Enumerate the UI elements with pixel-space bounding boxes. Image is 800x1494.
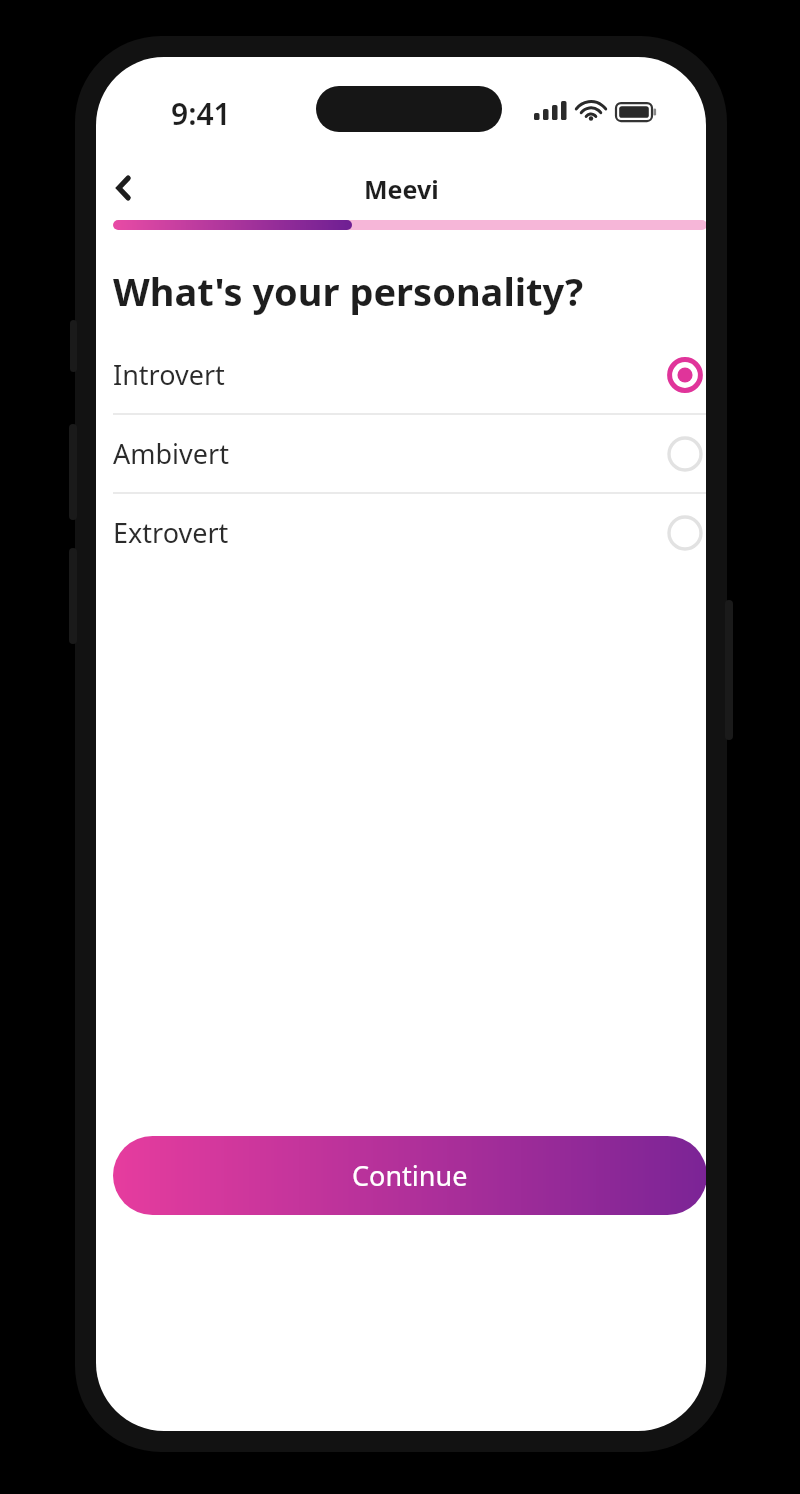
staticText: Ambivert — [113, 435, 663, 472]
button[interactable]: Ambivert — [113, 415, 706, 492]
staticText: Extrovert — [113, 514, 663, 551]
button[interactable]: Continue — [113, 1136, 706, 1215]
staticText: Continue — [352, 1157, 468, 1194]
staticText: What's your personality? — [113, 265, 584, 317]
button[interactable]: Back — [100, 164, 148, 212]
staticText: 9:41 — [171, 93, 231, 129]
staticText: Meevi — [364, 172, 439, 206]
button[interactable]: Introvert — [113, 336, 706, 413]
button[interactable]: Extrovert — [113, 494, 706, 571]
staticText: Introvert — [113, 356, 663, 393]
